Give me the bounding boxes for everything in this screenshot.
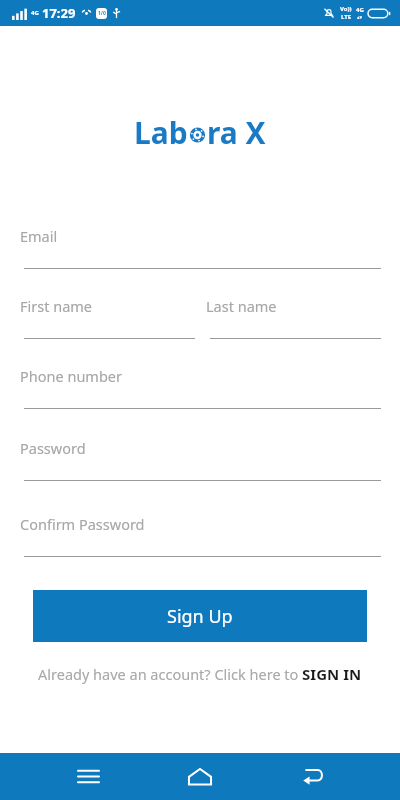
button[interactable]: Phone number: [19, 356, 381, 409]
button[interactable]: Already have an account? Click here to S…: [19, 664, 381, 684]
staticText: First name: [20, 296, 93, 316]
staticText: Lab: [134, 112, 188, 153]
button[interactable]: First name: [19, 286, 195, 339]
staticText: Password: [20, 438, 86, 458]
staticText: Already have an account? Click here to S…: [38, 664, 362, 684]
staticText: 1/0: [98, 10, 106, 17]
button[interactable]: Password: [19, 428, 381, 481]
button[interactable]: Home: [176, 753, 224, 800]
staticText: Sign Up: [167, 604, 233, 629]
button[interactable]: Last name: [205, 286, 381, 339]
staticText: Last name: [206, 296, 277, 316]
staticText: ▴▾: [357, 14, 363, 20]
staticText: 4G: [31, 9, 39, 17]
staticText: Email: [20, 226, 58, 246]
button[interactable]: Confirm Password: [19, 504, 381, 557]
staticText: Confirm Password: [20, 514, 145, 534]
staticText: Phone number: [20, 366, 122, 386]
staticText: ra X: [207, 112, 266, 153]
staticText: 17:29: [42, 4, 76, 22]
staticText: 4G: [356, 6, 364, 14]
staticText: LTE: [341, 13, 352, 21]
button[interactable]: Menu: [64, 753, 112, 800]
staticText: Vo)): [340, 5, 352, 13]
button[interactable]: Sign Up: [33, 590, 367, 642]
button[interactable]: Back: [288, 753, 336, 800]
button[interactable]: Email: [19, 216, 381, 269]
